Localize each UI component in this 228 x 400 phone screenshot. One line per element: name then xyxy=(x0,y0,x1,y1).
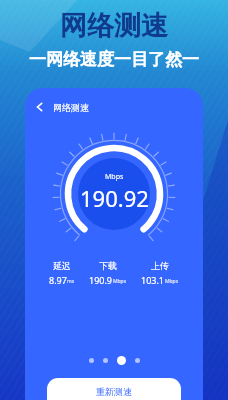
button[interactable]: Back xyxy=(33,97,89,117)
staticText: 网络测速 xyxy=(53,102,89,113)
staticText: Mbps xyxy=(105,172,124,182)
button[interactable]: Page dot xyxy=(135,358,140,363)
button[interactable]: Page dot xyxy=(117,356,126,365)
button[interactable]: 重新测速 xyxy=(47,378,181,400)
staticText: 延迟 xyxy=(53,260,71,271)
staticText: 重新测速 xyxy=(96,386,132,397)
staticText: 190.92 xyxy=(80,183,149,213)
staticText: 下载 xyxy=(99,260,117,271)
staticText: 103.1 xyxy=(141,274,165,286)
staticText: 8.97 xyxy=(49,274,67,286)
staticText: 网络测速 xyxy=(60,9,168,43)
button[interactable]: Page dot xyxy=(89,358,94,363)
staticText: 190.9 xyxy=(89,274,113,286)
staticText: ms xyxy=(67,278,75,285)
staticText: Mbps xyxy=(113,278,127,285)
staticText: 上传 xyxy=(151,260,169,271)
staticText: Mbps xyxy=(165,278,179,285)
staticText: 一网络速度一目了然一 xyxy=(29,49,199,70)
button[interactable]: Page dot xyxy=(103,358,108,363)
